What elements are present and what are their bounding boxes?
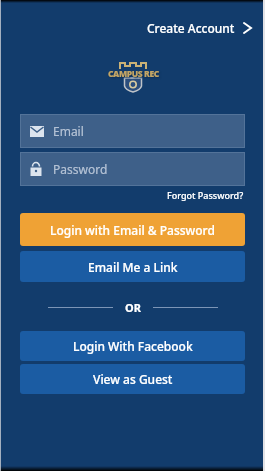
staticText: Create Account bbox=[147, 20, 235, 36]
staticText: CAMPUS REC bbox=[108, 68, 159, 80]
staticText: Forgot Password? bbox=[167, 189, 244, 201]
staticText: OR bbox=[125, 300, 141, 315]
button[interactable]: View as Guest bbox=[20, 364, 245, 394]
button[interactable]: Forgot Password? bbox=[167, 189, 244, 201]
button[interactable]: Email bbox=[20, 114, 245, 148]
staticText: Email bbox=[53, 123, 84, 139]
staticText: Login With Facebook bbox=[73, 338, 193, 354]
button[interactable]: Login With Facebook bbox=[20, 331, 245, 361]
button[interactable]: Create Account bbox=[147, 20, 252, 36]
button[interactable]: Email Me a Link bbox=[20, 251, 245, 282]
staticText: Login with Email & Password bbox=[50, 222, 215, 238]
staticText: View as Guest bbox=[93, 371, 173, 387]
staticText: Password bbox=[53, 161, 108, 177]
button[interactable]: Password bbox=[20, 152, 245, 186]
staticText: Email Me a Link bbox=[88, 259, 178, 275]
button[interactable]: Login with Email & Password bbox=[20, 213, 245, 246]
